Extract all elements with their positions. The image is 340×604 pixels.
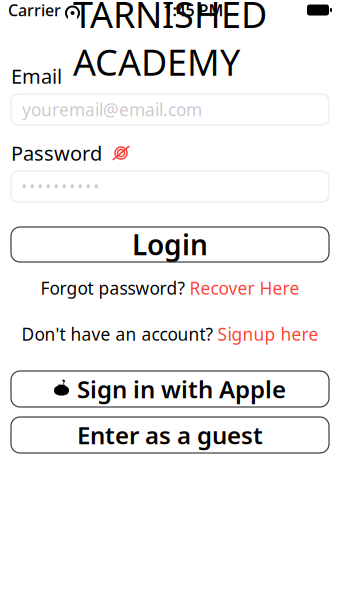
button[interactable]: Enter as a guest bbox=[11, 417, 329, 453]
staticText: youremail@email.com bbox=[22, 98, 202, 121]
button[interactable]: Don't have an account? bbox=[0, 322, 340, 346]
staticText: TARNISHED ACADEMY bbox=[73, 0, 267, 86]
staticText: Sign in with Apple bbox=[77, 373, 286, 405]
staticText: Don't have an account? bbox=[21, 322, 213, 345]
staticText: Signup here bbox=[217, 322, 318, 345]
staticText: Email bbox=[11, 63, 62, 89]
button[interactable]: Login bbox=[11, 227, 329, 262]
button[interactable]: Sign in with Apple bbox=[11, 371, 329, 407]
staticText: Enter as a guest bbox=[77, 419, 263, 451]
staticText: • • • • • • • • • • bbox=[22, 178, 99, 194]
staticText: Carrier bbox=[8, 0, 61, 21]
staticText: Forgot password? bbox=[40, 276, 185, 299]
staticText: Login bbox=[132, 226, 208, 263]
staticText: 1:45 PM bbox=[163, 0, 223, 21]
staticText: Recover Here bbox=[189, 276, 299, 299]
staticText: Password bbox=[11, 140, 102, 166]
button[interactable]: Forgot password? bbox=[0, 276, 340, 300]
button[interactable]: Show password bbox=[110, 144, 132, 162]
